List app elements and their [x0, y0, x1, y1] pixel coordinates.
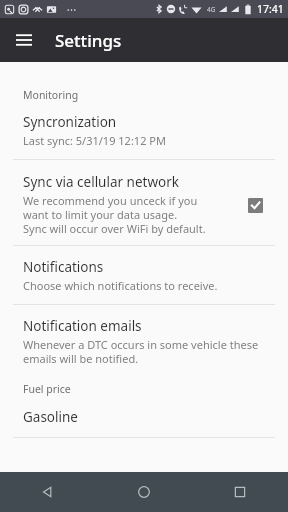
button[interactable]: Sync via cellular network [0, 173, 288, 236]
staticText: Gasoline [23, 408, 78, 426]
button[interactable]: Notification emails [0, 317, 288, 366]
staticText: Whenever a DTC occurs in some vehicle th… [23, 337, 259, 366]
staticText: Settings [55, 29, 122, 52]
staticText: Notification emails [23, 317, 142, 335]
button[interactable]: Back [0, 472, 96, 512]
staticText: 17:41 [257, 2, 284, 16]
staticText: We recommend you unceck if you want to l… [23, 193, 206, 236]
button[interactable]: Home [96, 472, 192, 512]
button[interactable]: Gasoline [0, 408, 288, 426]
staticText: Last sync: 5/31/19 12:12 PM [23, 133, 166, 148]
staticText: Syncronization [23, 113, 117, 131]
button[interactable]: Sync via cellular network toggle [238, 188, 272, 222]
staticText: Choose which notifications to receive. [23, 278, 218, 293]
button[interactable]: Notifications [0, 258, 288, 293]
button[interactable]: Recent apps [192, 472, 288, 512]
staticText: 4G [207, 5, 216, 14]
staticText: Sync via cellular network [23, 173, 179, 191]
staticText: Monitoring [23, 88, 79, 102]
button[interactable]: Open navigation menu [8, 24, 40, 56]
staticText: Notifications [23, 258, 104, 276]
button[interactable]: Syncronization [0, 113, 288, 148]
staticText: Fuel price [23, 382, 71, 396]
